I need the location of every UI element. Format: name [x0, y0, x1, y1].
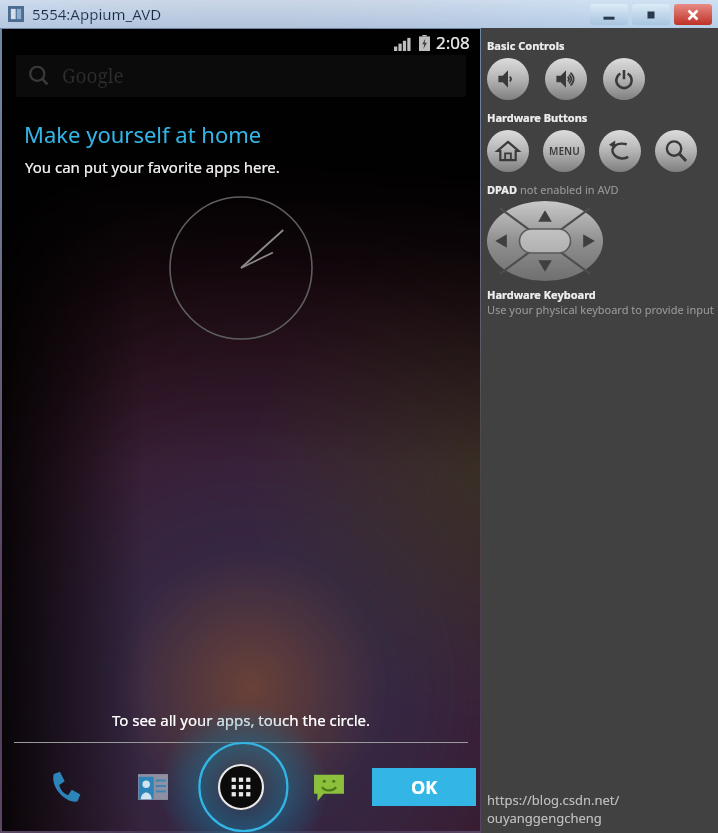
staticText: Hardware Buttons: [487, 110, 588, 125]
button[interactable]: Home: [487, 130, 529, 172]
button[interactable]: OK: [372, 768, 476, 806]
button[interactable]: Google search: [16, 55, 466, 97]
button[interactable]: Volume down: [487, 58, 529, 100]
staticText: Hardware Keyboard: [487, 287, 596, 302]
staticText: DPAD: [487, 182, 520, 197]
staticText: 5554:Appium_AVD: [32, 4, 162, 24]
staticText: Basic Controls: [487, 38, 565, 53]
staticText: To see all your apps, touch the circle.: [2, 710, 480, 730]
button[interactable]: Browser: [392, 761, 444, 813]
staticText: 2:08: [436, 31, 470, 54]
staticText: You can put your favorite apps here.: [25, 157, 280, 177]
button[interactable]: Apps: [215, 761, 267, 813]
button[interactable]: Window: [590, 4, 628, 25]
button[interactable]: Back: [599, 130, 641, 172]
staticText: https://blog.csdn.net/ouyanggengcheng: [487, 791, 712, 827]
staticText: MENU: [549, 144, 580, 158]
staticText: OK: [411, 775, 438, 800]
button[interactable]: Window: [632, 4, 670, 25]
button[interactable]: Volume up: [545, 58, 587, 100]
button[interactable]: Power: [603, 58, 645, 100]
staticText: Use your physical keyboard to provide in…: [487, 302, 714, 317]
button[interactable]: DPAD: [487, 201, 603, 281]
button[interactable]: Messaging: [303, 761, 355, 813]
button[interactable]: Phone: [38, 761, 90, 813]
staticText: Make yourself at home: [24, 119, 262, 149]
button[interactable]: Search: [655, 130, 697, 172]
button[interactable]: Contacts: [127, 761, 179, 813]
button[interactable]: Close: [674, 4, 712, 25]
staticText: not enabled in AVD: [520, 182, 619, 197]
staticText: Google: [62, 63, 124, 89]
button[interactable]: Menu: [543, 130, 585, 172]
